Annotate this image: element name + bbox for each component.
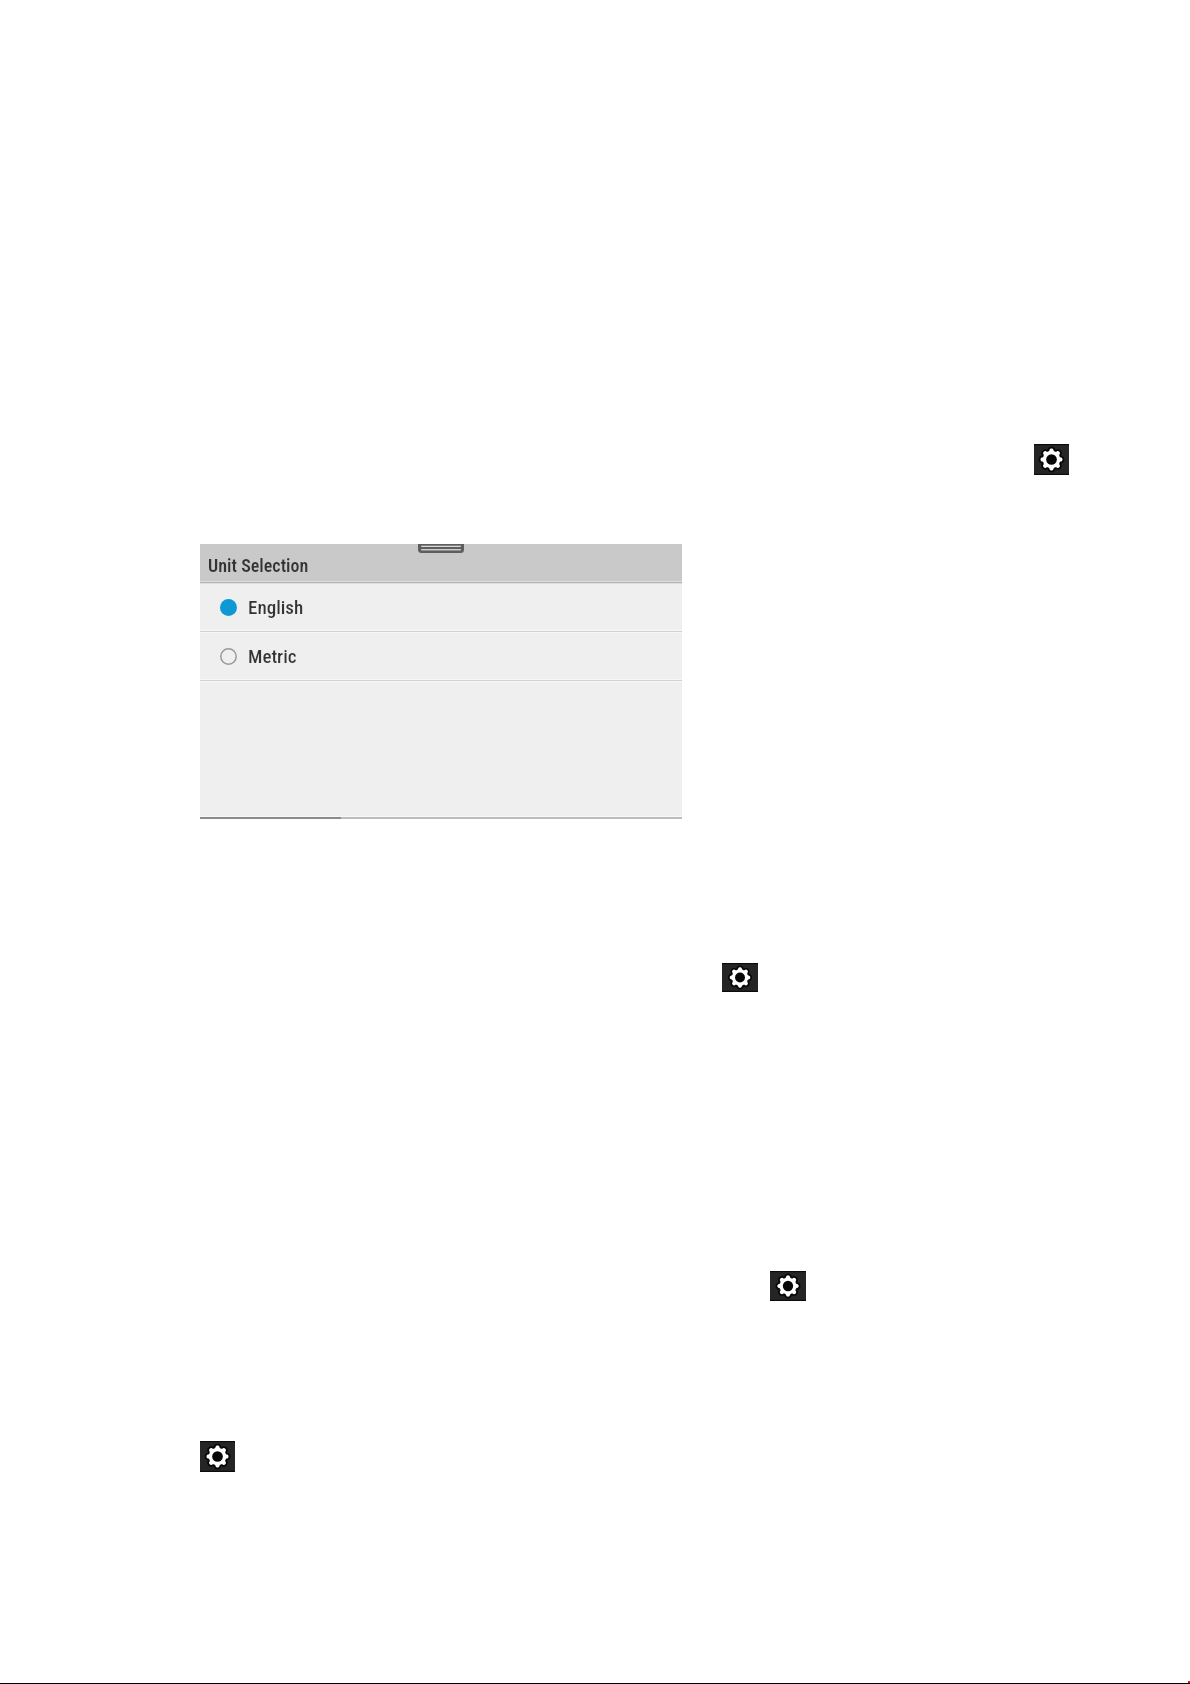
button[interactable]: English — [200, 584, 682, 630]
button[interactable]: Settings — [1034, 444, 1069, 475]
button[interactable]: Settings — [200, 1441, 235, 1472]
button[interactable]: Metric — [200, 633, 682, 679]
button[interactable]: Settings — [770, 1271, 806, 1301]
staticText: Unit Selection — [208, 555, 309, 576]
staticText: English — [248, 596, 304, 618]
staticText: Metric — [248, 645, 297, 667]
button[interactable]: Settings — [722, 963, 758, 992]
